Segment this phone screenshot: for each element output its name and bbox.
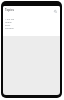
button[interactable]: 1 of 3 top [3,18,60,21]
button[interactable]: Consecte [3,27,60,30]
button[interactable]: Dolor [3,24,60,27]
button[interactable]: Lorem i [3,21,60,24]
staticText: Dolor [5,24,11,27]
button[interactable]: Search [53,9,57,13]
staticText: 1 of 3 top [5,18,14,21]
staticText: Consecte [5,27,14,30]
staticText: Lorem i [5,21,13,24]
staticText: Topics [5,8,14,12]
